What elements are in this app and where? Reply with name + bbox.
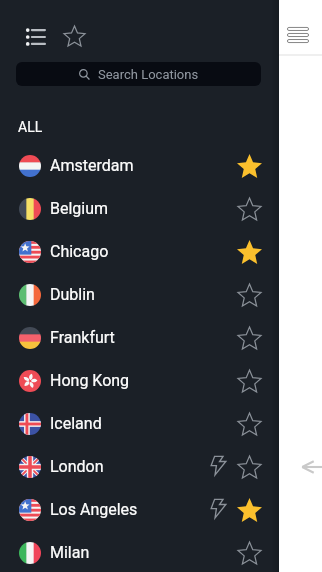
button[interactable]: Menu	[283, 21, 313, 49]
button[interactable]: Amsterdam	[0, 144, 279, 187]
button[interactable]: Milan	[0, 531, 279, 572]
staticText: London	[50, 457, 104, 476]
staticText: Los Angeles	[50, 500, 138, 519]
button[interactable]: Hong Kong	[0, 359, 279, 402]
button[interactable]: Iceland	[0, 402, 279, 445]
staticText: Frankfurt	[50, 328, 115, 347]
staticText: Belgium	[50, 199, 109, 218]
staticText: Search Locations	[98, 67, 199, 82]
staticText: Dublin	[50, 285, 95, 304]
button[interactable]: Chicago	[0, 230, 279, 273]
staticText: ALL	[18, 119, 43, 135]
staticText: Amsterdam	[50, 156, 134, 175]
button[interactable]: Frankfurt	[0, 316, 279, 359]
button[interactable]: Favorites	[61, 23, 87, 49]
staticText: Iceland	[50, 414, 102, 433]
button[interactable]: List	[23, 24, 49, 50]
button[interactable]: Back	[301, 455, 322, 479]
staticText: Milan	[50, 543, 90, 562]
button[interactable]: Belgium	[0, 187, 279, 230]
button[interactable]: London	[0, 445, 279, 488]
staticText: Hong Kong	[50, 371, 130, 390]
staticText: Chicago	[50, 242, 109, 261]
button[interactable]: Dublin	[0, 273, 279, 316]
button[interactable]: Search Locations	[16, 62, 261, 86]
button[interactable]: Los Angeles	[0, 488, 279, 531]
